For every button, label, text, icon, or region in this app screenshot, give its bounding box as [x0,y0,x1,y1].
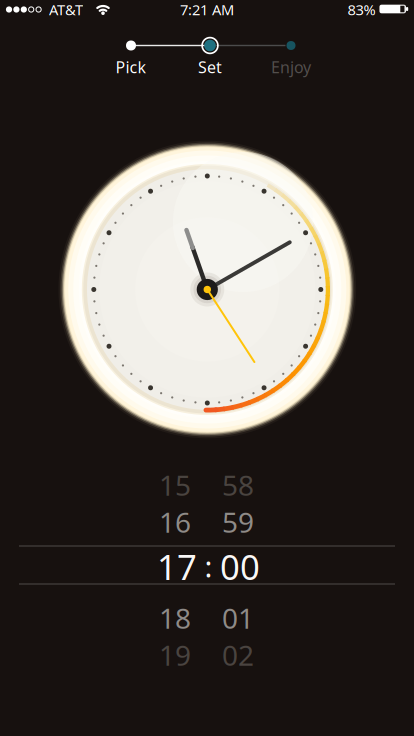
staticText: 59 [222,503,254,541]
staticText: 17 [157,543,197,589]
button[interactable]: 02 [208,637,268,673]
staticText: Set [198,56,222,78]
button[interactable]: 17 [145,547,209,585]
staticText: 19 [159,636,191,674]
button[interactable]: Set [180,32,240,78]
staticText: 18 [159,599,191,637]
button[interactable]: 58 [208,467,268,503]
button[interactable]: Enjoy [261,32,321,78]
button[interactable]: 15 [145,467,205,503]
staticText: Enjoy [271,56,311,78]
button[interactable]: Pick [101,32,161,78]
staticText: AT&T [49,0,83,19]
staticText: 16 [159,503,191,541]
staticText: Pick [115,56,146,78]
button[interactable]: 19 [145,637,205,673]
staticText: 83% [347,0,375,19]
staticText: 02 [222,636,254,674]
button[interactable]: 16 [145,504,205,540]
staticText: 7:21 AM [180,0,234,19]
button[interactable]: 01 [208,600,268,636]
button[interactable]: 00 [208,547,272,585]
staticText: 58 [222,466,254,504]
staticText: 00 [220,543,260,589]
staticText: 01 [222,599,254,637]
button[interactable]: 18 [145,600,205,636]
button[interactable]: 59 [208,504,268,540]
staticText: : [204,546,212,585]
staticText: 15 [159,466,191,504]
